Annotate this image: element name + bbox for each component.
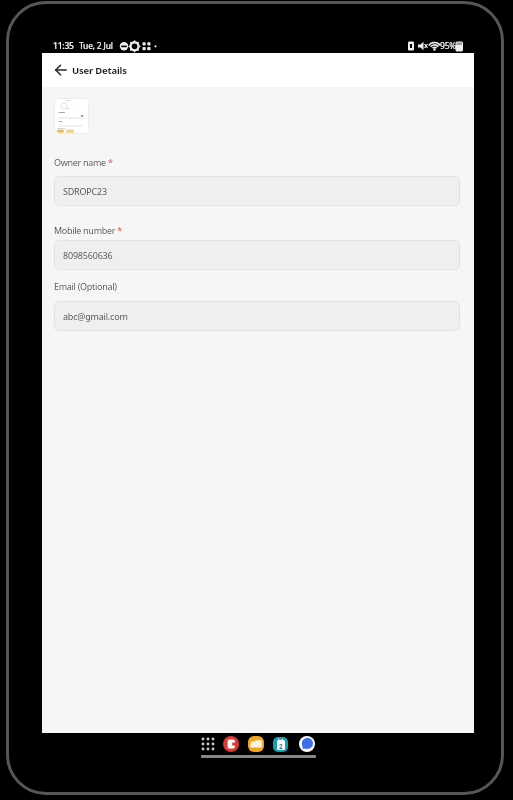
staticText: Email (Optional)	[54, 280, 117, 292]
staticText: Owner name *	[54, 156, 113, 168]
staticText: abc@gmail.com	[63, 310, 128, 322]
button[interactable]: 2	[273, 737, 288, 752]
button[interactable]	[223, 736, 239, 752]
staticText: SDROPC23	[63, 185, 107, 197]
button[interactable]: abc@gmail.com	[54, 301, 460, 331]
staticText: 2	[279, 742, 283, 750]
staticText: Tue, 2 Jul	[79, 40, 113, 52]
button[interactable]	[54, 98, 89, 134]
button[interactable]: SDROPC23	[54, 176, 460, 206]
button[interactable]	[299, 736, 315, 752]
staticText: Mobile number *	[54, 224, 122, 236]
staticText: User Details	[72, 64, 127, 77]
button[interactable]: 8098560636	[54, 240, 460, 270]
staticText: 95%	[440, 40, 457, 52]
staticText: 11:35	[53, 40, 74, 52]
button[interactable]	[50, 53, 72, 87]
staticText: 8098560636	[63, 249, 113, 261]
button[interactable]	[248, 736, 264, 752]
button[interactable]	[200, 736, 216, 752]
